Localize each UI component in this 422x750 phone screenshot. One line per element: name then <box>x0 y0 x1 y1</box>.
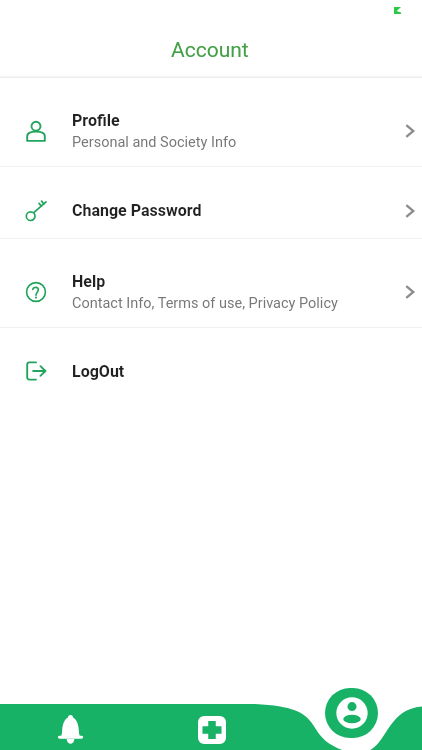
button[interactable]: Account <box>325 688 378 738</box>
staticText: Help <box>72 272 106 291</box>
button[interactable]: Change Password <box>0 167 422 238</box>
button[interactable]: Profile <box>0 78 422 166</box>
staticText: Change Password <box>72 201 202 220</box>
button[interactable]: Help <box>0 239 422 327</box>
button[interactable]: Add <box>191 709 232 750</box>
staticText: Contact Info, Terms of use, Privacy Poli… <box>72 295 338 312</box>
staticText: Profile <box>72 111 120 130</box>
staticText: Account <box>171 38 249 63</box>
staticText: Personal and Society Info <box>72 134 237 151</box>
staticText: LogOut <box>72 362 125 381</box>
button[interactable]: Notifications <box>50 709 91 750</box>
button[interactable]: LogOut <box>0 328 422 414</box>
